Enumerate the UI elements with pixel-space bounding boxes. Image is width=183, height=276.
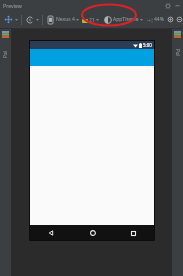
button[interactable]: Settings bbox=[164, 2, 171, 9]
button[interactable] bbox=[75, 14, 80, 26]
button[interactable]: Palette bbox=[173, 40, 182, 66]
staticText: Palette bbox=[2, 49, 9, 58]
button[interactable]: Design mode bbox=[3, 13, 14, 26]
button[interactable]: Back bbox=[30, 225, 72, 241]
staticText: 21 bbox=[89, 17, 95, 24]
staticText: Nexus 4 bbox=[56, 16, 75, 23]
button[interactable]: Theme bbox=[102, 13, 113, 26]
button[interactable] bbox=[139, 14, 144, 26]
button[interactable] bbox=[14, 14, 19, 26]
staticText: →| bbox=[147, 17, 154, 23]
button[interactable]: Orientation bbox=[24, 13, 35, 26]
button[interactable]: Recents bbox=[113, 225, 154, 241]
staticText: 44% bbox=[154, 16, 164, 23]
button[interactable]: Zoom out bbox=[176, 13, 183, 26]
button[interactable] bbox=[35, 14, 40, 26]
button[interactable]: Locale bbox=[146, 14, 154, 26]
button[interactable] bbox=[95, 14, 100, 26]
button[interactable]: Zoom to fit bbox=[165, 13, 176, 26]
button[interactable]: 21 bbox=[82, 14, 95, 26]
button[interactable]: Home bbox=[72, 225, 113, 241]
staticText: Palette bbox=[174, 49, 181, 58]
staticText: 5:00 bbox=[143, 42, 152, 48]
button[interactable]: Palette bbox=[1, 40, 10, 66]
staticText: Preview bbox=[3, 2, 22, 9]
button[interactable]: Minimize bbox=[174, 2, 181, 9]
button[interactable]: Device bbox=[45, 13, 56, 26]
staticText: AppTheme bbox=[113, 16, 139, 23]
